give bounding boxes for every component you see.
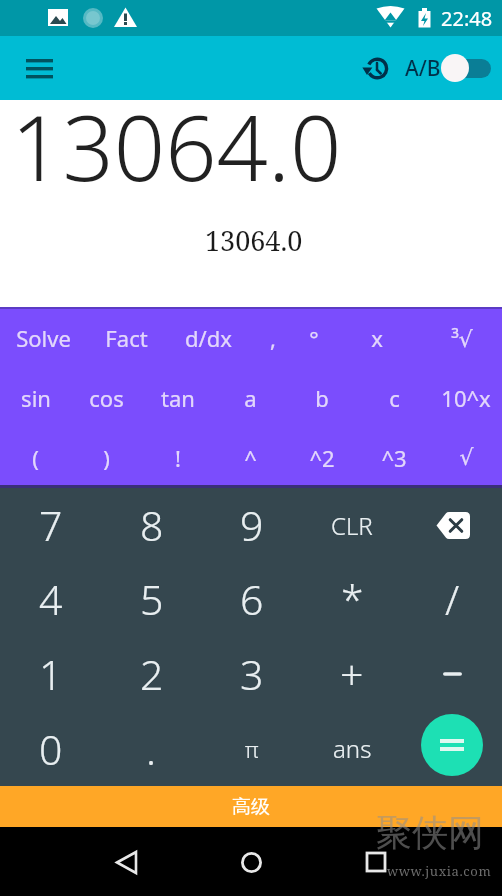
staticText: b [315,383,329,413]
button[interactable]: ^2 [286,428,358,488]
button[interactable]: 8 [101,488,202,562]
staticText: ³√ [451,323,473,353]
staticText: 2 [140,646,164,702]
button[interactable]: ans [302,711,402,786]
staticText: ^2 [309,443,335,473]
button[interactable]: ° [295,307,333,368]
staticText: π [245,734,259,764]
staticText: 22:48 [441,5,493,32]
button[interactable]: √ [430,428,502,488]
button[interactable] [402,636,502,711]
button[interactable]: Backspace [402,488,502,562]
button[interactable]: Home [225,836,277,888]
staticText: ° [309,323,319,353]
button[interactable]: CLR [302,488,402,562]
staticText: 高级 [232,795,270,819]
staticText: Solve [16,323,71,353]
staticText: 7 [39,497,63,553]
other: Backspace [435,512,470,539]
button[interactable]: 9 [202,488,302,562]
button[interactable]: ) [71,428,142,488]
button[interactable]: 5 [101,562,202,636]
staticText: , [270,323,276,353]
button[interactable]: cos [71,368,142,428]
button[interactable]: Solve [0,307,86,368]
button[interactable]: Recents [350,836,402,888]
staticText: 9 [240,497,264,553]
button[interactable]: Back [100,836,152,888]
button[interactable]: ^ [214,428,286,488]
button[interactable]: d/dx [167,307,250,368]
staticText: a [244,383,257,413]
button[interactable]: 10^x [430,368,502,428]
button[interactable]: 4 [0,562,101,636]
staticText: Fact [105,323,148,353]
staticText: CLR [331,509,373,542]
button[interactable]: ( [0,428,71,488]
button[interactable]: a [214,368,286,428]
staticText: sin [21,383,51,413]
staticText: www.juxia.com [387,862,492,880]
staticText: 3 [240,646,264,702]
button[interactable]: 0 [0,711,101,786]
staticText: 聚侠网 [376,810,484,855]
button[interactable]: ³√ [421,307,502,368]
button[interactable]: tan [142,368,214,428]
staticText: √ [459,445,474,471]
staticText: 8 [140,497,164,553]
staticText: ! [175,443,181,473]
staticText: 13064.0 [205,222,303,259]
button[interactable]: x [333,307,421,368]
staticText: ^3 [381,443,407,473]
button[interactable]: / [402,562,502,636]
staticText: d/dx [185,323,232,353]
staticText: x [371,323,383,353]
staticText: ( [32,443,39,473]
button[interactable]: ! [142,428,214,488]
staticText: 6 [240,571,264,627]
button[interactable]: c [358,368,430,428]
staticText: 5 [140,571,164,627]
button[interactable]: Fact [86,307,167,368]
button[interactable]: + [302,636,402,711]
staticText: / [445,571,460,627]
button[interactable]: * [302,562,402,636]
button[interactable]: ^3 [358,428,430,488]
button[interactable]: Equals [421,714,483,776]
staticText: A/B [405,54,441,83]
staticText: 13064.0 [11,85,342,208]
staticText: * [341,571,364,627]
button[interactable]: A/B [405,46,496,90]
staticText: cos [89,383,124,413]
staticText: c [389,383,400,413]
staticText: + [340,646,364,702]
button[interactable]: 6 [202,562,302,636]
staticText: 4 [39,571,63,627]
button[interactable]: . [101,711,202,786]
staticText: tan [161,383,195,413]
staticText: 0 [39,721,63,777]
staticText: . [146,721,157,777]
button[interactable]: b [286,368,358,428]
button[interactable]: 3 [202,636,302,711]
button[interactable]: History [354,46,398,90]
button[interactable]: Menu [13,42,65,94]
button[interactable]: 1 [0,636,101,711]
staticText: ^ [244,443,257,473]
button[interactable]: 7 [0,488,101,562]
staticText: ans [333,732,372,765]
button[interactable]: 高级 [0,786,502,827]
button[interactable]: sin [0,368,71,428]
staticText: 1 [39,646,63,702]
button[interactable]: , [250,307,295,368]
staticText: 10^x [441,383,491,413]
button[interactable]: 2 [101,636,202,711]
button[interactable]: Equals [402,711,502,786]
button[interactable]: π [202,711,302,786]
staticText: ) [103,443,110,473]
